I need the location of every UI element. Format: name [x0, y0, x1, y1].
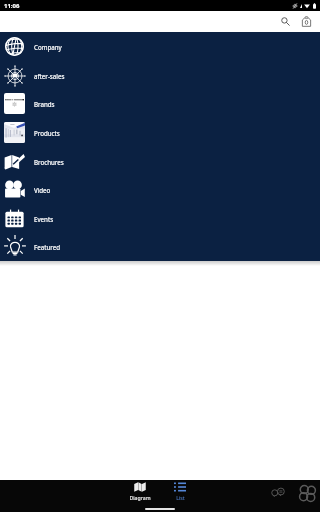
staticText: Products	[34, 129, 60, 137]
button[interactable]: after-sales	[0, 61, 320, 90]
staticText: Company	[34, 43, 62, 51]
button[interactable]: Overview	[298, 484, 316, 502]
button[interactable]: Translate	[270, 486, 287, 498]
button[interactable]: Search	[276, 12, 295, 31]
button[interactable]: Video	[0, 175, 320, 204]
staticText: Brands	[34, 100, 55, 108]
staticText: Video	[34, 186, 51, 194]
button[interactable]: Brands	[0, 89, 320, 118]
button[interactable]: Featured	[0, 232, 320, 261]
button[interactable]: Products	[0, 118, 320, 147]
staticText: 11:06	[4, 2, 20, 10]
button[interactable]: Events	[0, 204, 320, 233]
staticText: Brochures	[34, 158, 64, 166]
button[interactable]: Brochures	[0, 147, 320, 176]
staticText: Diagram	[129, 494, 151, 501]
staticText: Featured	[34, 243, 60, 251]
button[interactable]: Diagram	[123, 482, 157, 501]
staticText: Events	[34, 215, 54, 223]
staticText: after-sales	[34, 72, 65, 80]
staticText: List	[176, 494, 185, 501]
button[interactable]: Company	[0, 32, 320, 61]
button[interactable]: List	[163, 482, 197, 501]
button[interactable]: Cart	[297, 12, 316, 31]
